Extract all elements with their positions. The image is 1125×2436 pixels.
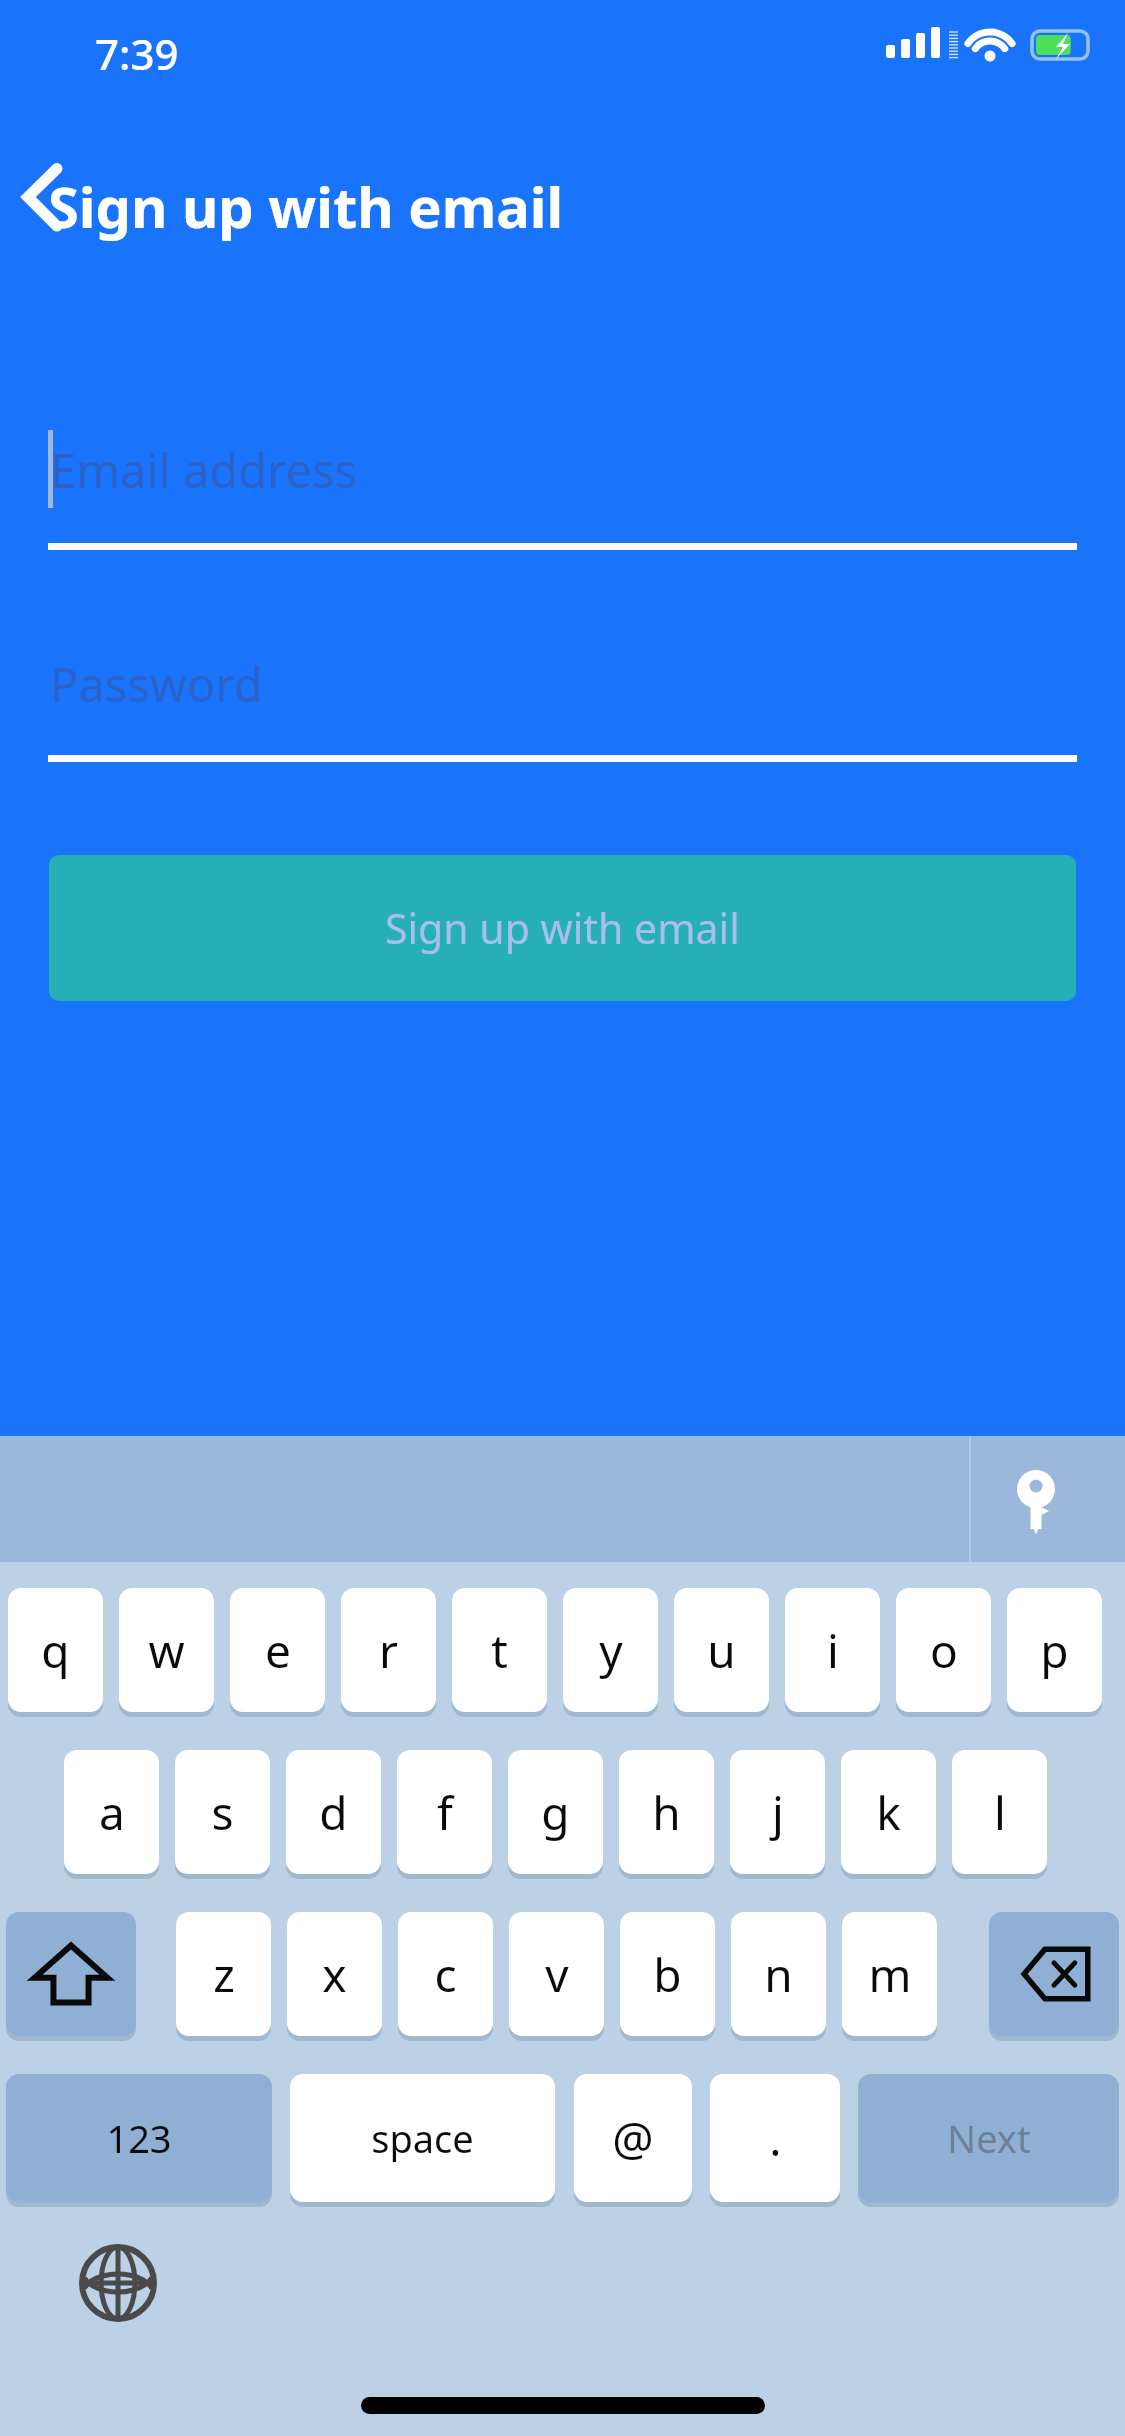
button[interactable]: q bbox=[8, 1588, 103, 1712]
staticText: space bbox=[371, 2112, 474, 2164]
staticText: v bbox=[545, 1943, 569, 2006]
staticText: j bbox=[772, 1781, 784, 1844]
button[interactable]: h bbox=[619, 1750, 714, 1874]
staticText: z bbox=[213, 1943, 235, 2006]
button[interactable]: n bbox=[731, 1912, 826, 2036]
staticText: c bbox=[434, 1943, 457, 2006]
button[interactable]: z bbox=[176, 1912, 271, 2036]
button[interactable]: Backspace bbox=[989, 1912, 1119, 2036]
button[interactable]: s bbox=[175, 1750, 270, 1874]
staticText: 123 bbox=[106, 2112, 172, 2164]
staticText: e bbox=[265, 1619, 291, 1682]
staticText: m bbox=[868, 1943, 912, 2006]
staticText: Sign up with email bbox=[48, 168, 564, 244]
staticText: l bbox=[994, 1781, 1006, 1844]
staticText: Sign up with email bbox=[385, 900, 740, 956]
staticText: Next bbox=[947, 2112, 1031, 2164]
button[interactable]: g bbox=[508, 1750, 603, 1874]
staticText: d bbox=[319, 1781, 348, 1844]
button[interactable]: Next bbox=[858, 2074, 1119, 2202]
staticText: a bbox=[99, 1781, 125, 1844]
staticText: . bbox=[769, 2107, 782, 2170]
button[interactable]: p bbox=[1007, 1588, 1102, 1712]
button[interactable]: Change keyboard language bbox=[79, 2244, 157, 2322]
button[interactable]: 123 bbox=[6, 2074, 272, 2202]
staticText: w bbox=[148, 1619, 185, 1682]
staticText: g bbox=[541, 1781, 570, 1844]
button[interactable]: b bbox=[620, 1912, 715, 2036]
button[interactable]: . bbox=[710, 2074, 840, 2202]
button[interactable]: v bbox=[509, 1912, 604, 2036]
button[interactable]: Password bbox=[48, 634, 1077, 762]
staticText: i bbox=[827, 1619, 839, 1682]
button[interactable]: Email address bbox=[48, 420, 1077, 550]
button[interactable]: i bbox=[785, 1588, 880, 1712]
button[interactable]: k bbox=[841, 1750, 936, 1874]
button[interactable]: o bbox=[896, 1588, 991, 1712]
button[interactable]: y bbox=[563, 1588, 658, 1712]
button[interactable]: u bbox=[674, 1588, 769, 1712]
button[interactable]: x bbox=[287, 1912, 382, 2036]
button[interactable]: space bbox=[290, 2074, 555, 2202]
button[interactable]: j bbox=[730, 1750, 825, 1874]
staticText: @ bbox=[612, 2107, 654, 2170]
button[interactable]: Sign up with email bbox=[49, 855, 1076, 1001]
button[interactable]: f bbox=[397, 1750, 492, 1874]
button[interactable]: Shift bbox=[6, 1912, 136, 2036]
button[interactable]: c bbox=[398, 1912, 493, 2036]
staticText: p bbox=[1040, 1619, 1069, 1682]
staticText: o bbox=[930, 1619, 958, 1682]
staticText: h bbox=[652, 1781, 681, 1844]
staticText: y bbox=[599, 1619, 623, 1682]
button[interactable]: @ bbox=[574, 2074, 692, 2202]
button[interactable]: r bbox=[341, 1588, 436, 1712]
staticText: s bbox=[211, 1781, 234, 1844]
button[interactable]: d bbox=[286, 1750, 381, 1874]
button[interactable]: l bbox=[952, 1750, 1047, 1874]
button[interactable]: m bbox=[842, 1912, 937, 2036]
button[interactable]: Back bbox=[0, 140, 114, 254]
button[interactable]: Password manager bbox=[1010, 1469, 1072, 1531]
staticText: u bbox=[707, 1619, 736, 1682]
staticText: k bbox=[876, 1781, 901, 1844]
button[interactable]: e bbox=[230, 1588, 325, 1712]
button[interactable]: a bbox=[64, 1750, 159, 1874]
staticText: f bbox=[437, 1781, 453, 1844]
staticText: Password bbox=[50, 652, 263, 716]
staticText: n bbox=[764, 1943, 793, 2006]
staticText: r bbox=[379, 1619, 398, 1682]
staticText: t bbox=[491, 1619, 508, 1682]
button[interactable]: t bbox=[452, 1588, 547, 1712]
button[interactable]: w bbox=[119, 1588, 214, 1712]
staticText: b bbox=[653, 1943, 682, 2006]
staticText: 7:39 bbox=[95, 25, 179, 82]
staticText: q bbox=[41, 1619, 70, 1682]
staticText: x bbox=[322, 1943, 347, 2006]
staticText: Email address bbox=[50, 438, 358, 502]
